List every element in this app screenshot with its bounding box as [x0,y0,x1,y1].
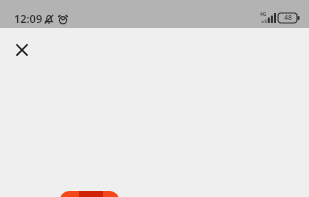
staticText: 48 [284,13,293,23]
staticText: 4G [260,11,267,18]
button[interactable]: Close [8,36,36,64]
button[interactable] [60,191,119,197]
staticText: 12:09 [14,11,43,26]
